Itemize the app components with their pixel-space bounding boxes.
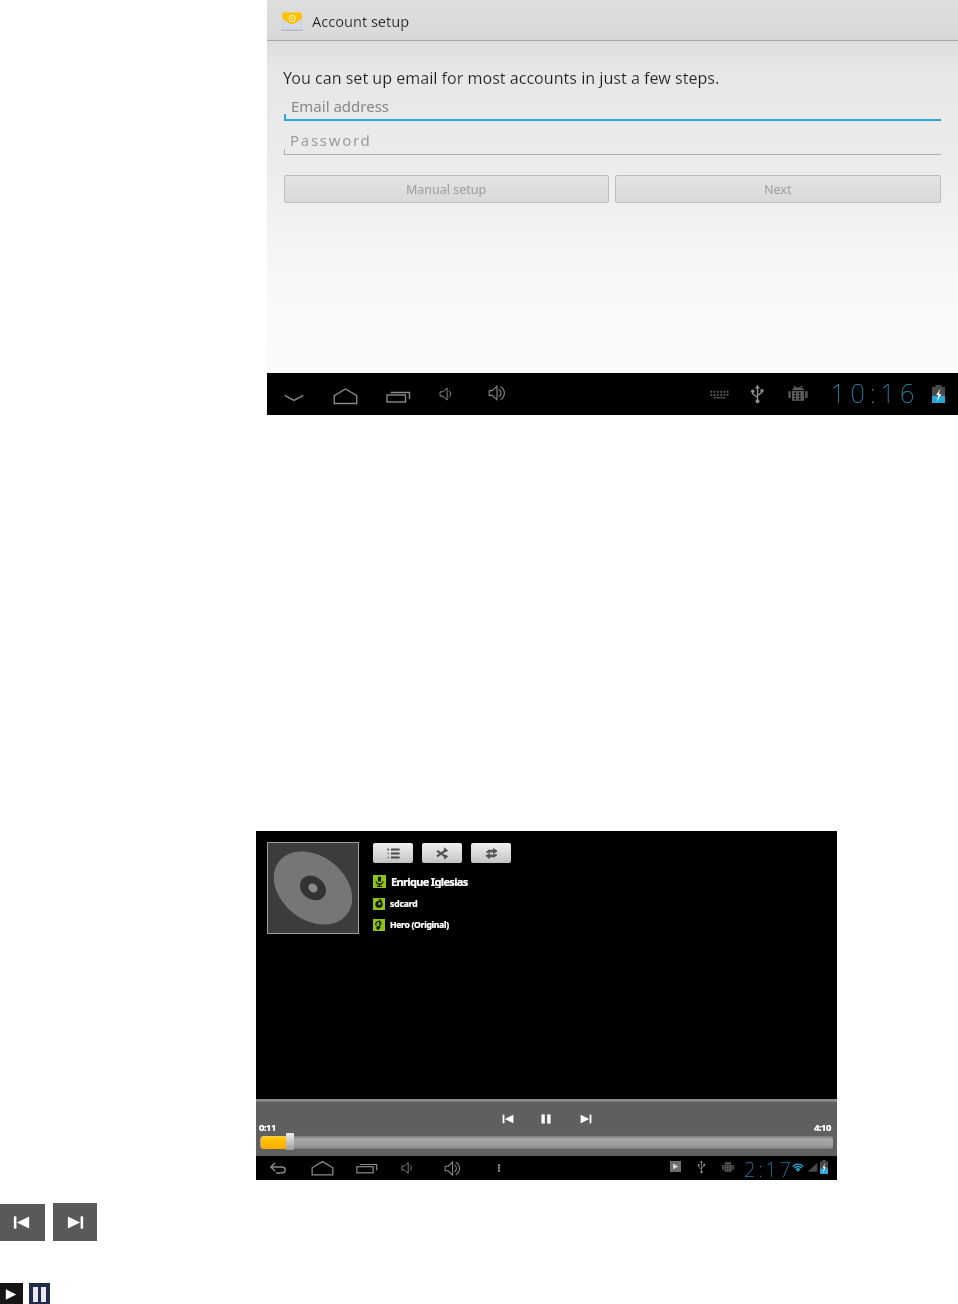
button[interactable]: Previous <box>497 1108 519 1130</box>
button[interactable]: Home <box>305 1156 340 1180</box>
button[interactable]: Volume up <box>480 375 516 413</box>
button[interactable]: Home <box>325 375 366 413</box>
staticText: 10:16 <box>831 376 920 410</box>
staticText: Next <box>764 181 792 198</box>
staticText: Manual setup <box>406 181 487 198</box>
button[interactable]: Recents <box>350 1156 384 1180</box>
button[interactable]: Pause <box>535 1108 557 1130</box>
button[interactable]: Volume down <box>395 1156 423 1180</box>
button[interactable]: Recents <box>378 375 419 413</box>
button[interactable]: Account setup <box>267 0 958 41</box>
button[interactable]: Seek <box>260 1132 833 1151</box>
staticText: Account setup <box>312 11 410 31</box>
button[interactable]: Manual setup <box>284 175 609 203</box>
button[interactable]: Play <box>0 1283 23 1304</box>
button[interactable]: More options <box>486 1156 512 1180</box>
button[interactable]: Next <box>575 1108 597 1130</box>
button[interactable]: Previous track <box>0 1204 45 1241</box>
button[interactable]: Volume down <box>431 375 465 413</box>
staticText: Email address <box>291 96 390 116</box>
staticText: 0:11 <box>259 1121 276 1134</box>
button[interactable]: Password <box>284 130 941 155</box>
staticText: Password <box>290 130 372 150</box>
button[interactable]: Album art <box>268 843 358 933</box>
button[interactable]: Next track <box>53 1203 97 1241</box>
staticText: Hero (Original) <box>390 919 449 931</box>
button[interactable]: Volume up <box>438 1156 469 1180</box>
staticText: 4:10 <box>814 1121 831 1134</box>
staticText: Enrique Iglesias <box>391 874 468 888</box>
button[interactable]: Hero (Original) <box>373 918 449 932</box>
button[interactable]: Enrique Iglesias <box>373 874 468 888</box>
button[interactable]: Back <box>276 375 312 413</box>
button[interactable]: Next <box>615 175 941 203</box>
button[interactable]: Repeat <box>471 843 511 863</box>
staticText: You can set up email for most accounts i… <box>283 67 720 89</box>
staticText: 2:17 <box>744 1156 794 1180</box>
staticText: sdcard <box>390 898 418 910</box>
button[interactable]: Email address <box>284 96 941 121</box>
button[interactable]: Playlist <box>373 843 413 863</box>
button[interactable]: Shuffle <box>422 843 462 863</box>
button[interactable]: Back <box>263 1156 294 1180</box>
button[interactable]: sdcard <box>373 897 418 911</box>
button[interactable]: Pause <box>29 1283 50 1304</box>
